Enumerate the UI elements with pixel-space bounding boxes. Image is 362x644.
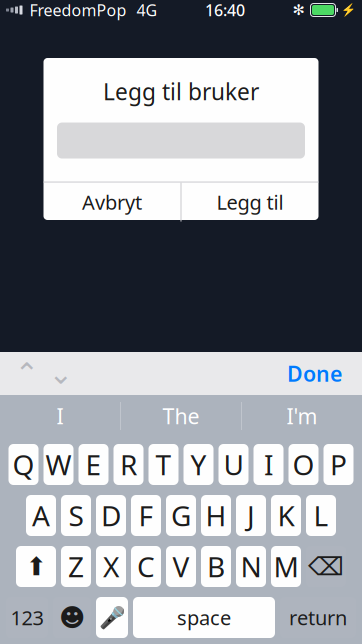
button[interactable]: D — [96, 495, 126, 536]
button[interactable]: M — [271, 546, 301, 587]
staticText: X — [103, 548, 119, 585]
button[interactable]: return — [280, 597, 356, 638]
button[interactable]: I — [0, 395, 120, 437]
button[interactable]: N — [236, 546, 266, 587]
button[interactable]: Next field — [44, 353, 78, 393]
button[interactable]: T — [148, 444, 178, 485]
button[interactable]: I — [253, 444, 283, 485]
staticText: ⌄ — [48, 357, 73, 390]
staticText: I — [264, 446, 273, 483]
staticText: W — [45, 446, 71, 483]
staticText: 🎤 — [98, 605, 125, 630]
staticText: E — [85, 446, 101, 483]
staticText: V — [172, 548, 189, 585]
button[interactable]: O — [288, 444, 318, 485]
staticText: ⌃ — [14, 357, 39, 390]
staticText: 16:40 — [205, 0, 245, 21]
staticText: T — [155, 446, 171, 483]
staticText: D — [101, 497, 121, 534]
button[interactable]: X — [96, 546, 126, 587]
staticText: B — [207, 548, 225, 585]
button[interactable]: F — [131, 495, 161, 536]
button[interactable]: Done — [273, 353, 356, 393]
staticText: 123 — [10, 604, 43, 631]
button[interactable]: U — [218, 444, 248, 485]
button[interactable]: B — [201, 546, 231, 587]
staticText: Done — [287, 359, 342, 388]
button[interactable]: K — [271, 495, 301, 536]
button[interactable]: Avbryt — [43, 183, 180, 222]
button[interactable]: S — [61, 495, 91, 536]
staticText: Q — [12, 446, 34, 483]
button[interactable]: V — [166, 546, 196, 587]
staticText: K — [277, 497, 294, 534]
staticText: The — [162, 402, 199, 430]
button[interactable]: Dictation — [96, 597, 128, 638]
button[interactable]: I'm — [242, 395, 362, 437]
button[interactable]: Previous field — [10, 353, 44, 393]
staticText: A — [32, 497, 50, 534]
staticText: FreedomPop — [29, 0, 126, 21]
button[interactable]: Z — [61, 546, 91, 587]
button[interactable]: G — [166, 495, 196, 536]
staticText: ⌫ — [308, 552, 344, 581]
staticText: space — [177, 604, 231, 631]
staticText: ✻ — [292, 2, 304, 18]
staticText: Y — [190, 446, 206, 483]
staticText: J — [247, 497, 255, 534]
button[interactable]: P — [323, 444, 353, 485]
staticText: ☻ — [59, 603, 85, 632]
button[interactable]: space — [133, 597, 275, 638]
staticText: I'm — [286, 402, 317, 430]
staticText: I — [56, 402, 63, 430]
button[interactable]: A — [26, 495, 56, 536]
staticText: Z — [68, 548, 84, 585]
staticText: Avbryt — [82, 189, 142, 215]
staticText: U — [223, 446, 243, 483]
staticText: O — [292, 446, 314, 483]
button[interactable]: 123 — [6, 597, 48, 638]
button[interactable]: Shift — [16, 546, 56, 587]
button[interactable]: The — [121, 395, 241, 437]
staticText: F — [138, 497, 153, 534]
button[interactable]: Emoji — [53, 597, 91, 638]
staticText: C — [137, 548, 155, 585]
staticText: Legg til — [216, 189, 283, 215]
button[interactable]: E — [78, 444, 108, 485]
button[interactable]: C — [131, 546, 161, 587]
button[interactable]: Delete — [306, 546, 346, 587]
button[interactable]: J — [236, 495, 266, 536]
staticText: M — [273, 548, 298, 585]
button[interactable]: H — [201, 495, 231, 536]
button[interactable]: Y — [183, 444, 213, 485]
staticText: S — [68, 497, 83, 534]
staticText: Legg til bruker — [103, 76, 259, 106]
staticText: R — [120, 446, 137, 483]
staticText: return — [289, 604, 347, 631]
button[interactable]: L — [306, 495, 336, 536]
staticText: G — [171, 497, 191, 534]
button[interactable]: Q — [8, 444, 38, 485]
staticText: 4G — [136, 0, 157, 21]
staticText: P — [330, 446, 347, 483]
staticText: L — [313, 497, 328, 534]
staticText: ⬆ — [25, 552, 46, 581]
staticText: H — [205, 497, 226, 534]
staticText: ⚡ — [341, 3, 356, 17]
button[interactable]: R — [113, 444, 143, 485]
staticText: N — [240, 548, 261, 585]
button[interactable]: W — [43, 444, 73, 485]
button[interactable]: Legg til — [181, 183, 318, 222]
